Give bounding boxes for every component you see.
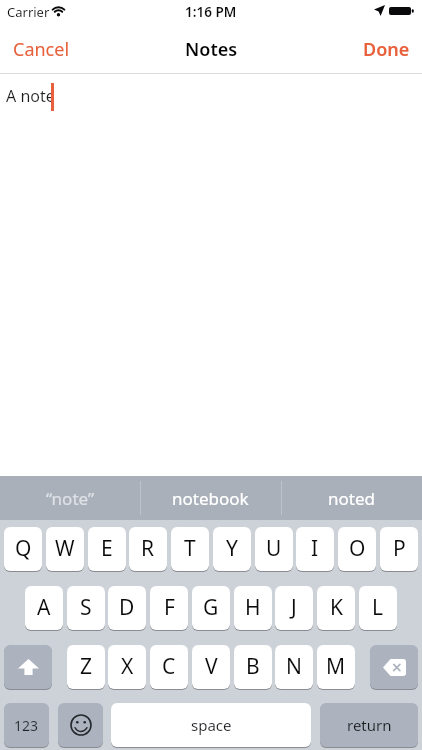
button[interactable]: Y (213, 527, 251, 571)
staticText: Q (15, 534, 32, 563)
button[interactable] (58, 703, 103, 747)
button[interactable]: J (275, 586, 313, 630)
staticText: I (311, 534, 319, 563)
staticText: F (164, 593, 175, 622)
staticText: 123 (14, 716, 39, 735)
staticText: P (393, 534, 406, 563)
button[interactable]: M (317, 645, 355, 689)
button[interactable]: P (380, 527, 418, 571)
button[interactable]: F (150, 586, 188, 630)
button[interactable]: Q (4, 527, 42, 571)
button[interactable]: Done (375, 26, 422, 73)
staticText: H (245, 593, 261, 622)
staticText: E (101, 534, 113, 563)
staticText: Y (226, 534, 238, 563)
button[interactable]: notebook (140, 476, 281, 520)
button[interactable]: “note” (0, 476, 140, 520)
staticText: “note” (46, 487, 95, 510)
staticText: T (184, 534, 196, 563)
button[interactable]: B (234, 645, 272, 689)
staticText: Z (80, 652, 93, 681)
button[interactable]: D (108, 586, 146, 630)
staticText: 1:16 PM (185, 3, 237, 21)
button[interactable] (4, 645, 52, 689)
staticText: Carrier (7, 3, 50, 21)
staticText: U (266, 534, 282, 563)
staticText: D (119, 593, 135, 622)
button[interactable]: C (150, 645, 188, 689)
button[interactable]: X (108, 645, 146, 689)
button[interactable]: A (25, 586, 63, 630)
staticText: Cancel (13, 37, 70, 62)
staticText: Done (363, 37, 410, 62)
button[interactable]: I (296, 527, 334, 571)
button[interactable]: W (46, 527, 84, 571)
button[interactable]: space (111, 703, 311, 747)
staticText: Notes (185, 37, 238, 62)
staticText: A note (6, 85, 55, 107)
button[interactable]: R (129, 527, 167, 571)
button[interactable]: V (192, 645, 230, 689)
button[interactable]: U (255, 527, 293, 571)
staticText: N (286, 652, 302, 681)
button[interactable]: Z (67, 645, 105, 689)
button[interactable]: Cancel (0, 26, 57, 73)
staticText: C (162, 652, 176, 681)
staticText: M (326, 652, 346, 681)
button[interactable]: N (275, 645, 313, 689)
button[interactable]: S (67, 586, 105, 630)
button[interactable]: G (192, 586, 230, 630)
button[interactable]: T (171, 527, 209, 571)
staticText: O (349, 534, 366, 563)
button[interactable]: O (338, 527, 376, 571)
button[interactable]: L (359, 586, 397, 630)
staticText: notebook (172, 487, 249, 510)
staticText: K (330, 593, 343, 622)
button[interactable]: 123 (4, 703, 49, 747)
button[interactable]: noted (281, 476, 422, 520)
staticText: L (372, 593, 384, 622)
staticText: S (80, 593, 92, 622)
staticText: space (191, 715, 232, 735)
staticText: G (203, 593, 219, 622)
staticText: X (121, 652, 134, 681)
staticText: W (55, 534, 75, 563)
staticText: A (37, 593, 51, 622)
staticText: noted (328, 487, 375, 510)
staticText: J (291, 593, 297, 622)
staticText: return (347, 715, 392, 735)
button[interactable] (370, 645, 418, 689)
button[interactable]: H (234, 586, 272, 630)
button[interactable]: E (88, 527, 126, 571)
button[interactable]: return (320, 703, 418, 747)
staticText: V (205, 652, 218, 681)
button[interactable]: K (317, 586, 355, 630)
staticText: B (246, 652, 260, 681)
staticText: R (141, 534, 155, 563)
